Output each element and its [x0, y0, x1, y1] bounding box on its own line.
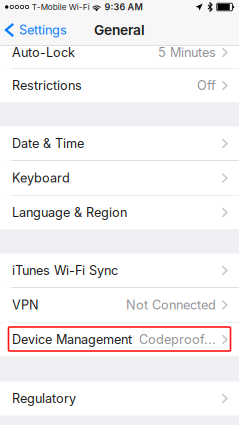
staticText: Device Management — [12, 332, 132, 347]
staticText: Auto-Lock — [12, 45, 75, 60]
staticText: Language & Region — [12, 205, 127, 220]
staticText: 9:36 AM — [104, 1, 142, 12]
staticText: iTunes Wi-Fi Sync — [12, 263, 118, 278]
button[interactable]: iTunes Wi-Fi Sync — [0, 253, 239, 287]
button[interactable]: Device Management — [0, 322, 239, 356]
staticText: VPN — [12, 297, 39, 313]
button[interactable]: Restrictions — [0, 68, 239, 102]
button[interactable]: Keyboard — [0, 161, 239, 195]
staticText: Off — [197, 78, 216, 93]
staticText: General — [94, 22, 145, 38]
staticText: Regulatory — [12, 391, 76, 406]
button[interactable]: Language & Region — [0, 195, 239, 229]
button[interactable]: Date & Time — [0, 126, 239, 160]
button[interactable]: Auto-Lock — [0, 35, 239, 69]
staticText: Date & Time — [12, 136, 84, 151]
button[interactable]: VPN — [0, 288, 239, 322]
button[interactable]: Settings — [0, 14, 75, 46]
staticText: Not Connected — [126, 297, 216, 313]
staticText: Codeproof... — [139, 332, 216, 347]
button[interactable]: Regulatory — [0, 381, 239, 415]
staticText: Keyboard — [12, 170, 70, 186]
staticText: Settings — [19, 22, 67, 38]
staticText: 5 Minutes — [158, 45, 216, 60]
staticText: T-Mobile Wi-Fi — [32, 2, 90, 12]
staticText: Restrictions — [12, 78, 82, 93]
